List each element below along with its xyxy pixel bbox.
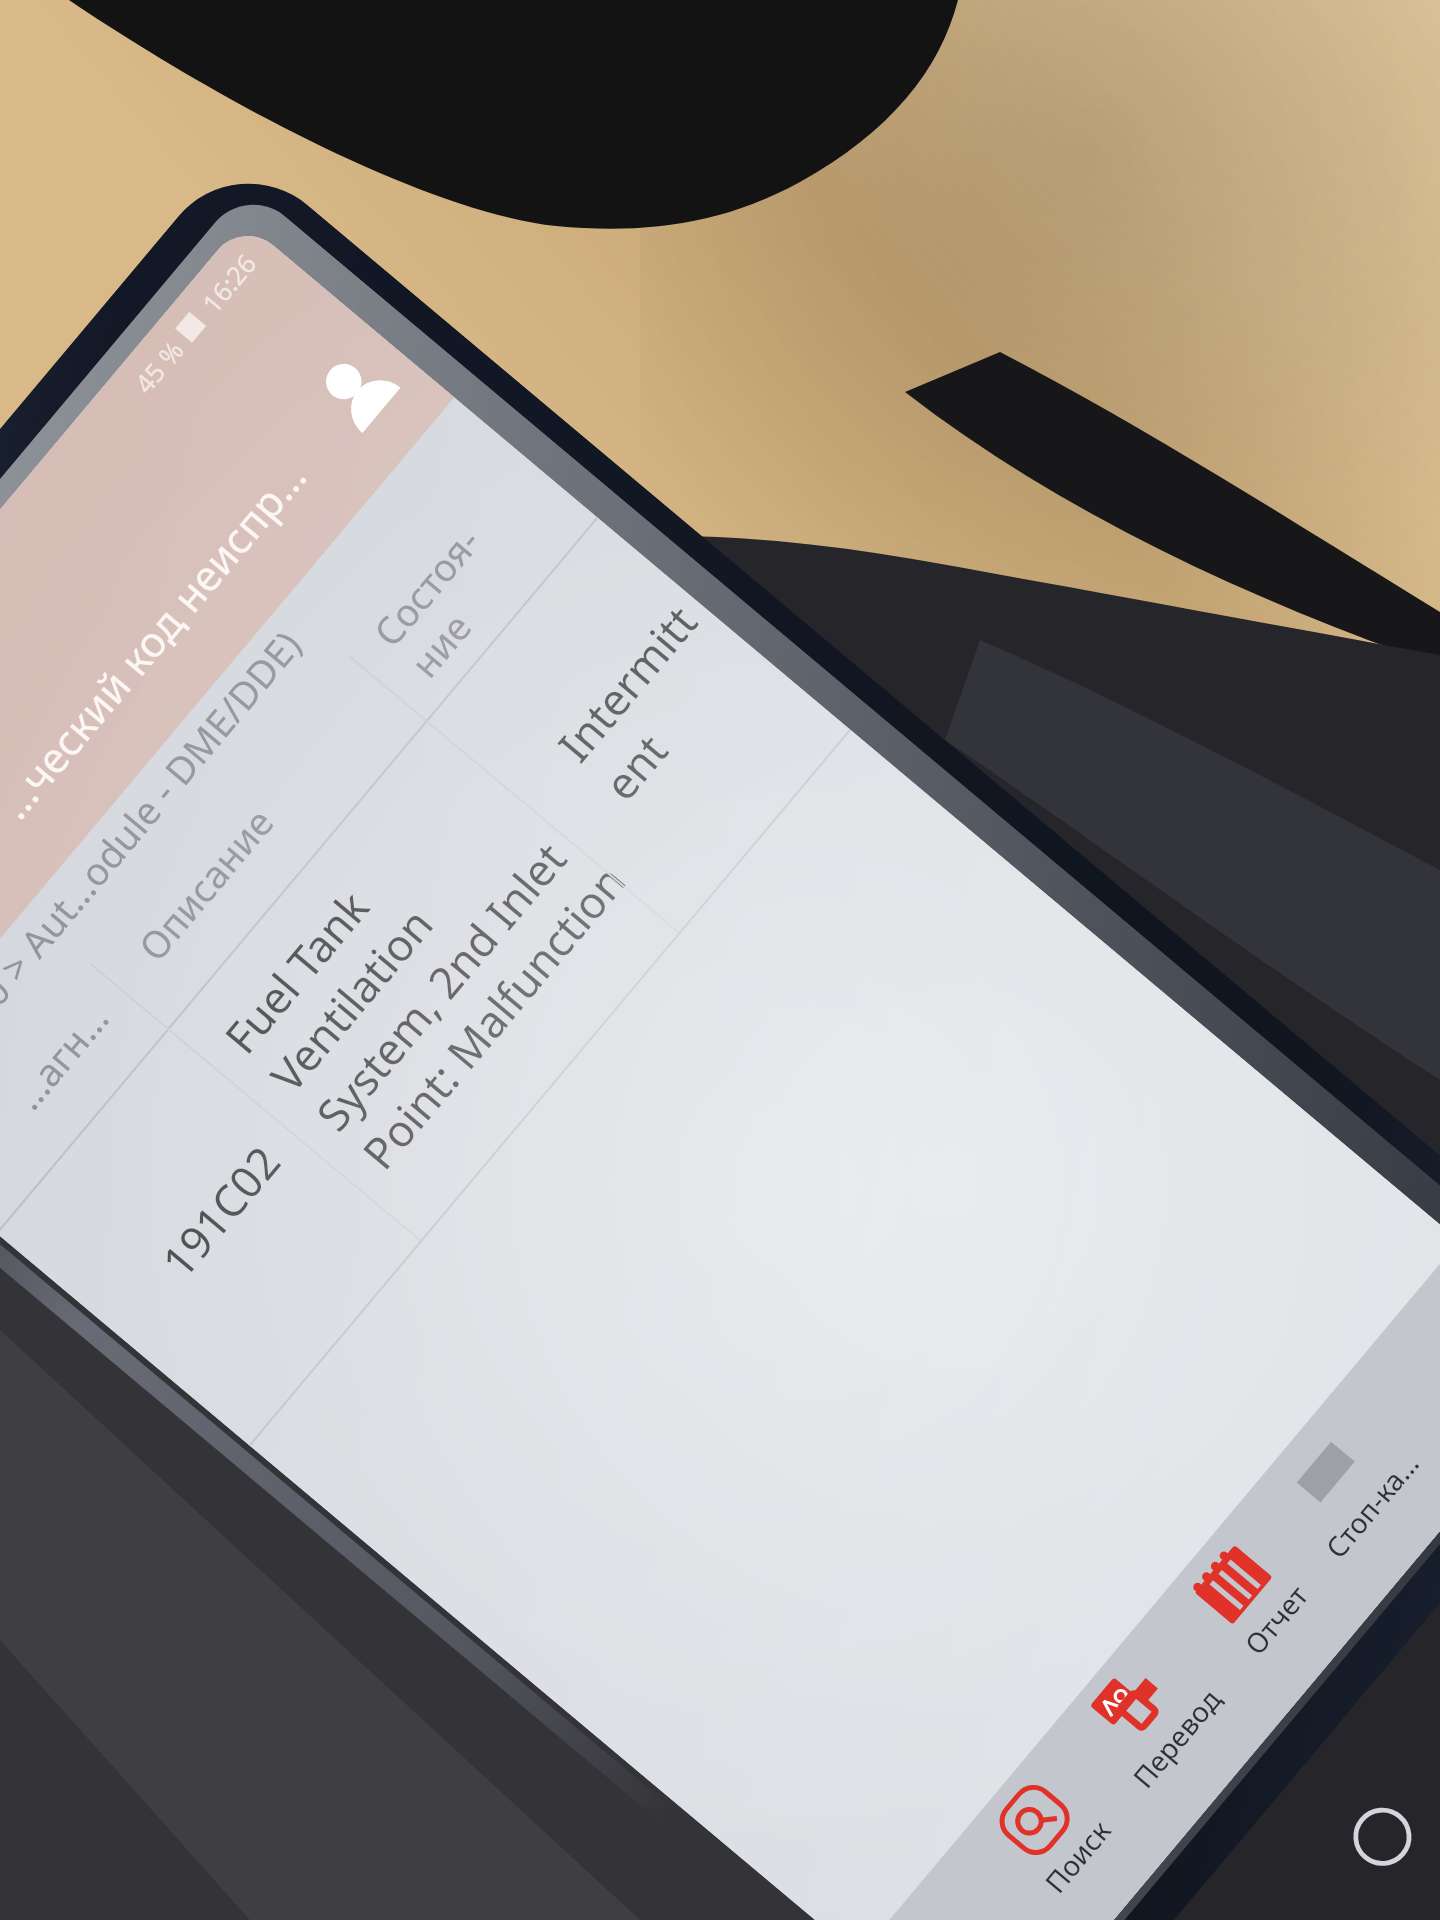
staticText: Состоя- ние <box>361 516 528 687</box>
button[interactable]: Отчет <box>1158 1505 1341 1691</box>
button[interactable]: 191C02 <box>0 517 850 1445</box>
staticText: 0.60 > Aut…odule - DME/DDE) <box>0 620 311 1057</box>
staticText: Поиск <box>1036 1812 1119 1900</box>
staticText: …агн… <box>1 993 120 1120</box>
staticText: 191C02 <box>148 1133 293 1289</box>
button[interactable]: Стоп-ка… <box>1255 1390 1437 1577</box>
staticText: Перевод <box>1124 1681 1229 1795</box>
button[interactable]: Account <box>307 339 411 443</box>
staticText: Описание <box>126 797 284 971</box>
button[interactable]: Поиск <box>960 1741 1143 1920</box>
staticText: Intermitt ent <box>544 592 756 812</box>
staticText: …ческий код неиспр… <box>0 448 318 830</box>
staticText: Fuel Tank Ventilation System, 2nd Inlet … <box>211 736 638 1181</box>
button[interactable]: 0.60 > Aut…odule - DME/DDE) <box>0 386 513 1162</box>
staticText: 16:26 <box>194 246 264 320</box>
staticText: Стоп-ка… <box>1317 1445 1427 1565</box>
staticText: Отчет <box>1236 1577 1316 1662</box>
button[interactable]: Перевод <box>1059 1623 1242 1809</box>
staticText: 45 % <box>126 332 191 400</box>
button[interactable]: Home <box>1330 1785 1435 1889</box>
button[interactable]: …ческий код неиспр… <box>0 310 441 1102</box>
